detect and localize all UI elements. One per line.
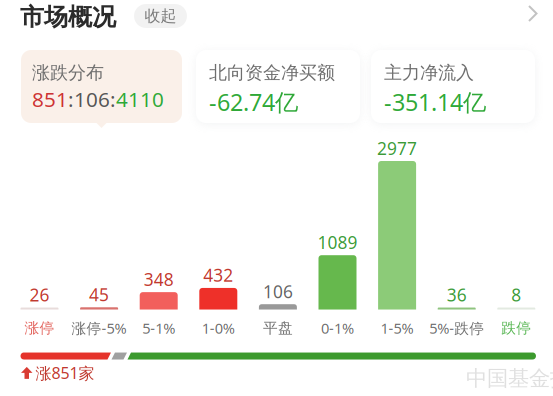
staticText: 26: [29, 283, 49, 306]
staticText: :: [110, 85, 116, 113]
button[interactable]: 市场概况: [20, 2, 116, 32]
button[interactable]: 北向资金净买额: [196, 50, 360, 123]
staticText: 市场概况: [20, 2, 116, 32]
button[interactable]: 涨跌分布: [21, 50, 182, 123]
staticText: 4110: [116, 85, 164, 113]
staticText: 2977: [377, 136, 417, 160]
staticText: 主力净流入: [384, 61, 474, 84]
button[interactable]: 主力净流入: [371, 50, 535, 123]
staticText: 106: [263, 280, 293, 303]
button[interactable]: More: [524, 3, 546, 25]
staticText: 106: [74, 85, 110, 113]
staticText: 432: [203, 263, 233, 287]
staticText: 涨停-5%: [72, 318, 127, 338]
staticText: 1089: [317, 231, 357, 254]
staticText: -351.14亿: [384, 86, 486, 118]
staticText: 0-1%: [321, 318, 354, 338]
staticText: 8: [511, 283, 521, 306]
staticText: 平盘: [263, 319, 293, 337]
button[interactable]: 收起: [134, 4, 187, 28]
staticText: 涨停: [24, 319, 54, 337]
staticText: 涨851家: [35, 362, 94, 384]
staticText: 5%-跌停: [429, 318, 484, 338]
staticText: 348: [144, 267, 174, 291]
staticText: 1-5%: [381, 318, 414, 338]
staticText: 跌停: [501, 319, 531, 337]
staticText: 851: [32, 85, 68, 113]
staticText: 收起: [144, 6, 176, 26]
staticText: 涨跌分布: [32, 61, 104, 84]
staticText: 5-1%: [142, 318, 175, 338]
staticText: -62.74亿: [209, 86, 298, 118]
staticText: 北向资金净买额: [209, 61, 335, 84]
staticText: :: [68, 85, 74, 113]
staticText: 1-0%: [202, 318, 235, 338]
staticText: 36: [447, 283, 467, 306]
staticText: 45: [89, 283, 109, 306]
staticText: 中国基金报: [466, 365, 553, 392]
